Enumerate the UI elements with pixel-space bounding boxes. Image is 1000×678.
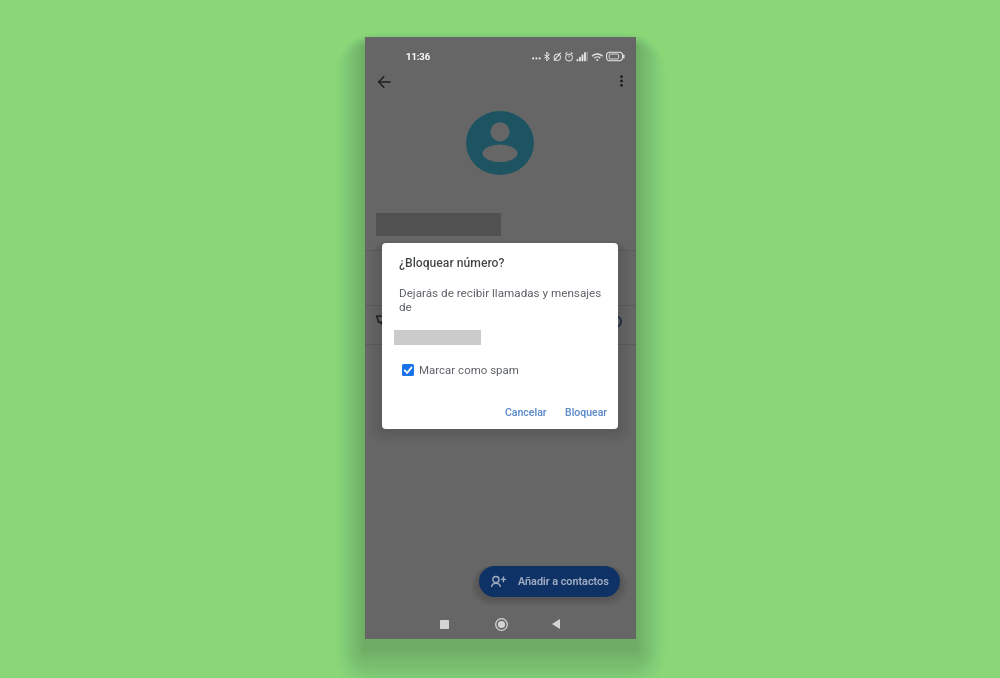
button[interactable]: Añadir a contactos [479, 566, 620, 597]
button[interactable]: Back [372, 70, 396, 94]
staticText: Dejarás de recibir llamadas y mensajes d… [399, 286, 603, 313]
button[interactable]: Back [544, 612, 568, 636]
staticText: Marcar como spam [419, 363, 519, 376]
staticText: Cancelar [505, 406, 547, 418]
staticText: Añadir a contactos [518, 575, 609, 588]
staticText: Bloquear [565, 406, 608, 418]
button[interactable]: Recent apps [432, 612, 456, 636]
button[interactable]: Cancelar [499, 402, 553, 422]
button[interactable]: More options [610, 70, 632, 92]
button[interactable]: Marcar como spam [402, 359, 519, 380]
staticText: ¿Bloquear número? [399, 256, 505, 270]
staticText: 11:36 [406, 51, 431, 62]
button[interactable]: Home [489, 612, 513, 636]
button[interactable]: Bloquear [559, 402, 614, 422]
